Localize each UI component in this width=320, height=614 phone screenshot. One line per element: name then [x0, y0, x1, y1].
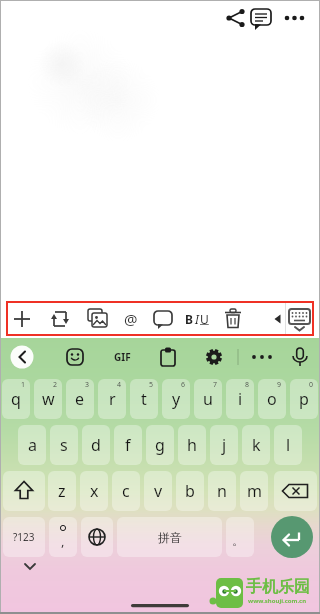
button[interactable]	[183, 305, 211, 333]
button[interactable]	[149, 305, 177, 333]
button[interactable]: q	[2, 379, 30, 419]
staticText: b	[185, 480, 195, 502]
button[interactable]	[286, 343, 314, 371]
button[interactable]: e	[66, 379, 94, 419]
staticText: 手机乐园	[246, 577, 310, 597]
staticText: 9	[277, 380, 282, 390]
staticText: o	[267, 388, 277, 410]
button[interactable]	[117, 305, 145, 333]
button[interactable]: ?123	[3, 517, 45, 557]
button[interactable]: d	[82, 425, 110, 465]
staticText: y	[172, 388, 181, 410]
staticText: 6	[181, 380, 186, 390]
staticText: I	[195, 311, 199, 327]
staticText: 拼音	[158, 530, 182, 545]
button[interactable]: i	[226, 379, 254, 419]
staticText: f	[125, 434, 131, 456]
button[interactable]	[248, 343, 276, 371]
staticText: ,	[61, 532, 65, 550]
button[interactable]: o	[258, 379, 286, 419]
button[interactable]: y	[162, 379, 190, 419]
button[interactable]: z	[48, 471, 76, 511]
staticText: www.shouji.com.cn	[248, 597, 307, 605]
button[interactable]: 拼音	[117, 517, 222, 557]
staticText: U	[200, 311, 209, 327]
button[interactable]	[61, 343, 89, 371]
staticText: l	[286, 434, 291, 456]
staticText: u	[203, 388, 213, 410]
staticText: e	[75, 388, 85, 410]
button[interactable]	[219, 305, 247, 333]
button[interactable]: j	[210, 425, 238, 465]
staticText: @	[124, 309, 138, 329]
staticText: i	[238, 388, 243, 410]
staticText: w	[42, 388, 55, 410]
button[interactable]	[154, 343, 182, 371]
button[interactable]: GIF	[92, 343, 152, 371]
button[interactable]	[271, 516, 313, 558]
staticText: 0	[309, 380, 314, 390]
staticText: v	[154, 480, 163, 502]
button[interactable]: n	[208, 471, 236, 511]
staticText: m	[247, 480, 262, 502]
button[interactable]: b	[176, 471, 204, 511]
button[interactable]: f	[114, 425, 142, 465]
staticText: 7	[213, 380, 218, 390]
button[interactable]	[8, 305, 36, 333]
button[interactable]: c	[112, 471, 140, 511]
staticText: ?123	[13, 530, 35, 544]
button[interactable]: a	[18, 425, 46, 465]
staticText: 5	[149, 380, 154, 390]
staticText: h	[187, 434, 197, 456]
staticText: 3	[85, 380, 90, 390]
staticText: g	[155, 434, 165, 456]
staticText: 8	[245, 380, 250, 390]
staticText: z	[58, 480, 66, 502]
button[interactable]	[285, 305, 313, 333]
button[interactable]	[46, 305, 74, 333]
button[interactable]	[280, 4, 308, 32]
button[interactable]: w	[34, 379, 62, 419]
button[interactable]: k	[242, 425, 270, 465]
staticText: B	[185, 311, 193, 327]
button[interactable]: t	[130, 379, 158, 419]
button[interactable]: m	[240, 471, 268, 511]
button[interactable]	[49, 517, 77, 557]
staticText: 1	[21, 380, 26, 390]
staticText: x	[90, 480, 99, 502]
staticText: k	[252, 434, 261, 456]
button[interactable]: l	[274, 425, 302, 465]
button[interactable]	[8, 343, 36, 371]
button[interactable]	[81, 517, 113, 557]
button[interactable]: x	[80, 471, 108, 511]
staticText: j	[222, 434, 227, 456]
staticText: s	[60, 434, 68, 456]
button[interactable]: p	[290, 379, 318, 419]
button[interactable]	[222, 4, 250, 32]
button[interactable]	[83, 305, 111, 333]
staticText: 4	[117, 380, 122, 390]
button[interactable]	[200, 343, 228, 371]
staticText: d	[91, 434, 101, 456]
staticText: q	[11, 388, 21, 410]
button[interactable]	[247, 4, 275, 32]
staticText: GIF	[114, 350, 131, 364]
staticText: 。	[232, 533, 244, 548]
button[interactable]: h	[178, 425, 206, 465]
button[interactable]: g	[146, 425, 174, 465]
button[interactable]: r	[98, 379, 126, 419]
button[interactable]	[3, 471, 45, 511]
staticText: c	[122, 480, 130, 502]
button[interactable]	[274, 471, 317, 511]
button[interactable]	[226, 517, 254, 557]
button[interactable]: v	[144, 471, 172, 511]
staticText: p	[299, 388, 309, 410]
button[interactable]: u	[194, 379, 222, 419]
staticText: n	[217, 480, 227, 502]
button[interactable]: s	[50, 425, 78, 465]
staticText: 2	[53, 380, 58, 390]
staticText: a	[28, 434, 37, 456]
staticText: r	[109, 388, 116, 410]
staticText: t	[141, 388, 147, 410]
